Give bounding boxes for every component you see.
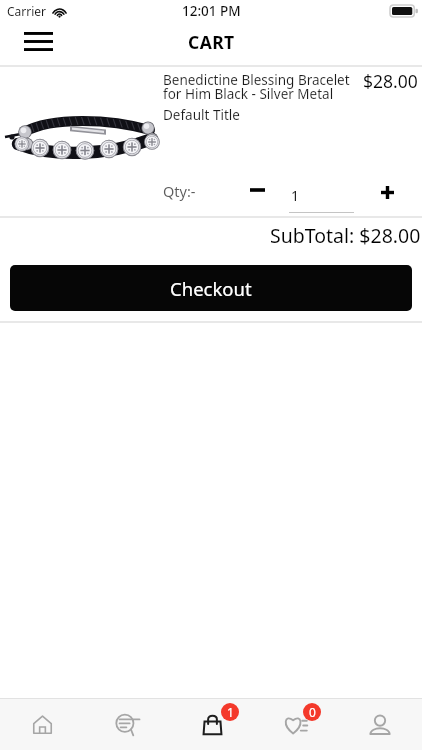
staticText: CART	[188, 30, 235, 54]
staticText: Checkout	[170, 276, 252, 301]
button[interactable]: Cart	[170, 699, 254, 750]
button[interactable]: Wishlist	[254, 699, 338, 750]
staticText: for Him Black - Silver Metal	[163, 85, 334, 103]
staticText: 0	[309, 704, 316, 720]
staticText: Qty:-	[163, 181, 196, 201]
staticText: $28.00	[363, 69, 418, 93]
button[interactable]: Open menu	[12, 25, 66, 63]
button[interactable]: Home	[0, 699, 85, 750]
staticText: 1	[291, 186, 300, 205]
staticText: Carrier	[7, 3, 47, 19]
button[interactable]: Checkout	[10, 265, 412, 311]
button[interactable]: Decrease quantity	[239, 175, 275, 205]
staticText: Benedictine Blessing Bracelet	[163, 71, 350, 89]
staticText: 1	[227, 704, 234, 720]
staticText: Default Title	[163, 106, 240, 124]
staticText: SubTotal: $28.00	[270, 222, 421, 249]
button[interactable]: Account	[338, 699, 422, 750]
button[interactable]: Increase quantity	[369, 176, 405, 208]
button[interactable]: Search	[85, 699, 170, 750]
staticText: 12:01 PM	[182, 2, 241, 20]
